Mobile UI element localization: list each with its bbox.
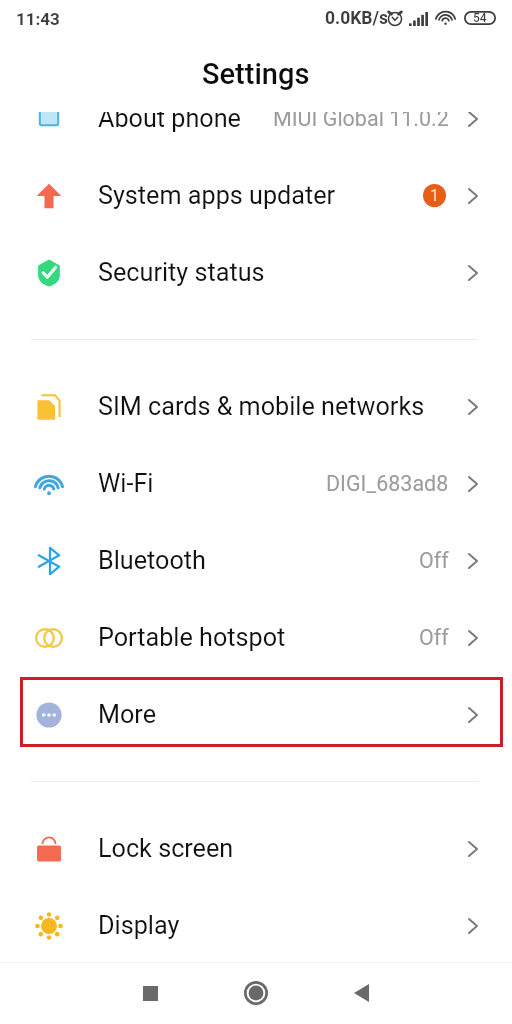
staticText: Lock screen bbox=[98, 834, 234, 864]
staticText: Settings bbox=[202, 57, 310, 91]
staticText: Wi-Fi bbox=[98, 469, 154, 499]
staticText: Portable hotspot bbox=[98, 623, 286, 653]
button[interactable]: Lock screen bbox=[0, 810, 512, 887]
button[interactable]: More bbox=[0, 676, 512, 753]
button[interactable]: Wi-Fi bbox=[0, 445, 512, 522]
button[interactable]: Display bbox=[0, 887, 512, 962]
staticText: DIGI_683ad8 bbox=[326, 471, 449, 496]
staticText: 0.0KB/s bbox=[325, 8, 389, 29]
button[interactable]: Security status bbox=[0, 234, 512, 311]
button[interactable]: About phone bbox=[0, 112, 512, 157]
button[interactable]: SIM cards & mobile networks bbox=[0, 368, 512, 445]
button[interactable]: Recent apps bbox=[120, 963, 180, 1023]
staticText: About phone bbox=[98, 112, 241, 134]
staticText: MIUI Global 11.0.2 bbox=[273, 112, 449, 131]
staticText: Display bbox=[98, 911, 180, 941]
button[interactable]: Back bbox=[331, 963, 391, 1023]
staticText: 1 bbox=[430, 186, 439, 205]
staticText: More bbox=[98, 700, 157, 730]
staticText: 54 bbox=[473, 11, 487, 25]
button[interactable]: Bluetooth bbox=[0, 522, 512, 599]
button[interactable]: Home bbox=[226, 963, 286, 1023]
staticText: System apps updater bbox=[98, 181, 336, 211]
staticText: Off bbox=[419, 548, 449, 573]
staticText: SIM cards & mobile networks bbox=[98, 392, 425, 422]
button[interactable]: Portable hotspot bbox=[0, 599, 512, 676]
staticText: Bluetooth bbox=[98, 546, 206, 576]
staticText: Off bbox=[419, 625, 449, 650]
staticText: Security status bbox=[98, 258, 265, 288]
staticText: 11:43 bbox=[16, 9, 60, 29]
button[interactable]: System apps updater bbox=[0, 157, 512, 234]
